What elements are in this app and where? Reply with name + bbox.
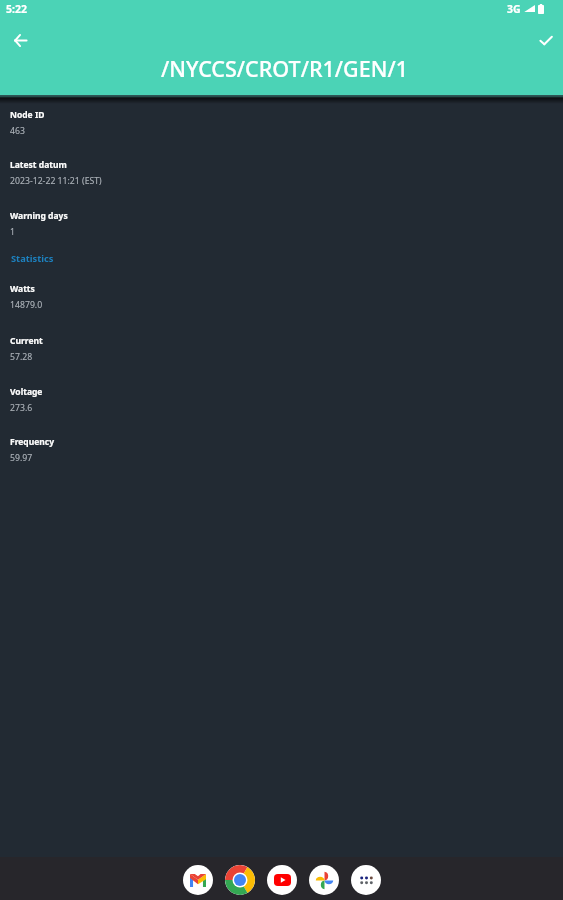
staticText: Latest datum (10, 159, 67, 171)
staticText: 2023-12-22 11:21 (EST) (10, 175, 102, 187)
staticText: 14879.0 (10, 299, 43, 311)
staticText: Statistics (11, 252, 54, 265)
staticText: /NYCCS/CROT/R1/GEN/1 (3, 54, 563, 83)
button[interactable]: YouTube (267, 865, 297, 895)
staticText: 3G (507, 2, 521, 16)
staticText: 1 (10, 226, 15, 238)
button[interactable]: Confirm (528, 22, 563, 58)
staticText: Frequency (10, 436, 55, 448)
staticText: Node ID (10, 109, 45, 121)
button[interactable]: All apps (351, 865, 381, 895)
staticText: 57.28 (10, 351, 33, 363)
staticText: Current (10, 335, 43, 347)
staticText: Watts (10, 283, 35, 295)
button[interactable]: Back (2, 22, 38, 58)
button[interactable]: Statistics (11, 252, 54, 265)
button[interactable]: Gmail (183, 865, 213, 895)
button[interactable]: Google Photos (309, 865, 339, 895)
staticText: 5:22 (6, 2, 27, 16)
button[interactable]: Chrome (225, 865, 255, 895)
staticText: 463 (10, 125, 25, 137)
staticText: Warning days (10, 210, 68, 222)
staticText: 59.97 (10, 452, 33, 464)
staticText: 273.6 (10, 402, 33, 414)
staticText: Voltage (10, 386, 43, 398)
